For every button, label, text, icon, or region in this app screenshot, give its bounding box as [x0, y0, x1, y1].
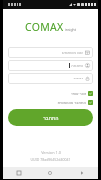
staticText: insight [65, 27, 76, 32]
staticText: •••••• [73, 76, 83, 82]
staticText: COMAX [25, 20, 64, 34]
staticText: התחבר אוטומטית [57, 100, 86, 105]
staticText: Version 1.0 [41, 150, 61, 155]
button[interactable]: זכור אותי [8, 89, 93, 97]
button[interactable]: התחבר אוטומטית [8, 98, 93, 106]
staticText: זכור אותי [71, 91, 86, 96]
button[interactable]: התחבר [8, 109, 93, 126]
button[interactable]: Home [34, 167, 66, 179]
staticText: UUID 78ad96452d40041 [30, 157, 71, 162]
button[interactable]: •••••• [8, 73, 93, 84]
staticText: שם משתמש [61, 50, 83, 56]
staticText: סיסמה [71, 63, 83, 68]
button[interactable]: Back [66, 167, 98, 179]
button[interactable]: שם משתמש [8, 47, 93, 58]
button[interactable]: סיסמה [8, 60, 93, 71]
staticText: התחבר [43, 115, 59, 121]
button[interactable]: Recents [3, 167, 34, 179]
